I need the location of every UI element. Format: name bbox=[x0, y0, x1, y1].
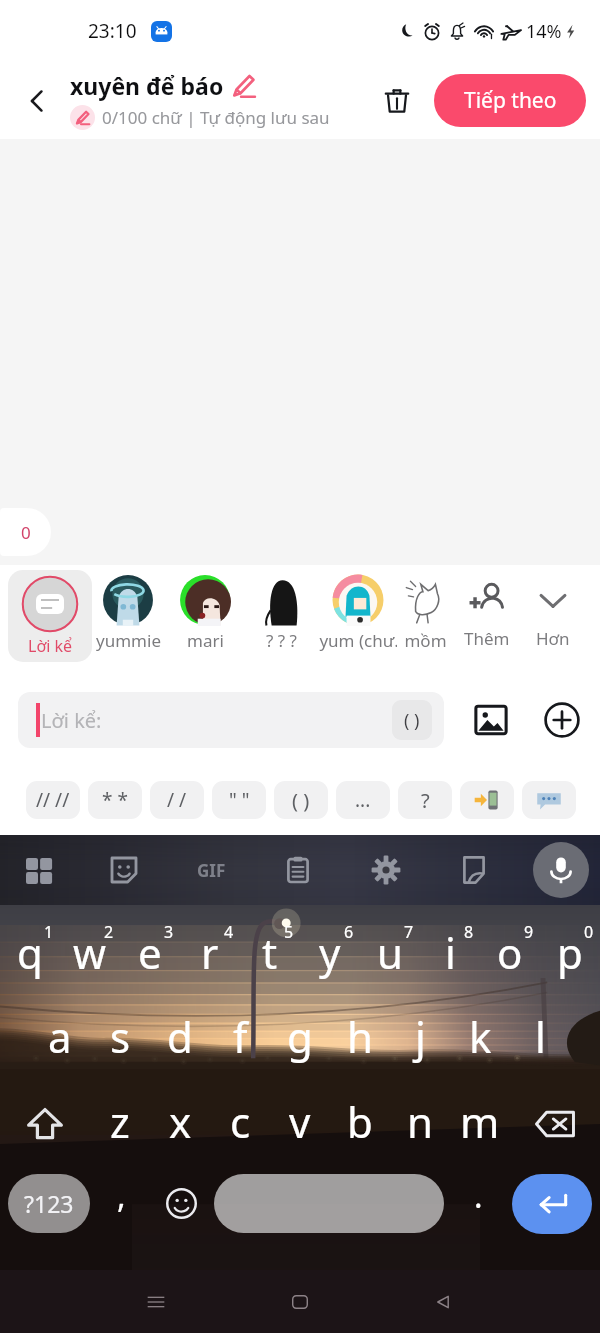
button[interactable]: 9 bbox=[480, 905, 540, 991]
staticText: y bbox=[319, 924, 341, 981]
button[interactable]: Chat bbox=[522, 781, 576, 819]
button[interactable]: Tiếp theo bbox=[434, 74, 586, 127]
button[interactable]: yum (chư… bbox=[319, 574, 397, 652]
button[interactable]: Clipboard bbox=[275, 847, 321, 893]
button[interactable]: mồm bbox=[386, 574, 464, 652]
button[interactable]: 0 bbox=[0, 508, 51, 556]
staticText: // // bbox=[36, 787, 70, 813]
button[interactable]: Stickers bbox=[101, 847, 147, 893]
button[interactable]: Hơn bbox=[517, 577, 589, 650]
button[interactable]: b bbox=[330, 1088, 390, 1160]
button[interactable]: Apps bbox=[15, 847, 61, 893]
button[interactable]: 0 bbox=[540, 905, 600, 991]
staticText: " " bbox=[229, 787, 250, 813]
button[interactable]: 6 bbox=[300, 905, 360, 991]
button[interactable]: Voice input bbox=[533, 842, 589, 898]
button[interactable]: Text theme bbox=[451, 847, 497, 893]
button[interactable]: ?123 bbox=[8, 1174, 90, 1233]
button[interactable]: Recents bbox=[130, 1276, 182, 1328]
button[interactable]: Send to phone bbox=[460, 781, 514, 819]
button[interactable]: Shift bbox=[0, 1088, 90, 1160]
button[interactable]: Emoji bbox=[158, 1174, 204, 1233]
button[interactable]: Lời kể bbox=[8, 570, 92, 662]
staticText: q bbox=[17, 924, 43, 981]
button[interactable]: k bbox=[450, 1008, 510, 1080]
button[interactable]: mari bbox=[166, 574, 244, 652]
button[interactable]: m bbox=[450, 1088, 510, 1160]
button[interactable]: Settings bbox=[363, 847, 409, 893]
button[interactable]: 3 bbox=[120, 905, 180, 991]
button[interactable]: GIF bbox=[189, 848, 233, 892]
button[interactable]: Add image bbox=[470, 699, 512, 741]
staticText: , bbox=[117, 1174, 126, 1218]
staticText: xuyên để báo bbox=[70, 70, 224, 101]
staticText: g bbox=[287, 1008, 313, 1065]
staticText: r bbox=[201, 924, 219, 981]
button[interactable]: ... bbox=[336, 781, 390, 819]
button[interactable]: c bbox=[210, 1088, 270, 1160]
button[interactable]: Back bbox=[9, 73, 65, 129]
staticText: * * bbox=[102, 787, 128, 813]
staticText: 1 bbox=[44, 921, 54, 943]
button[interactable]: f bbox=[210, 1008, 270, 1080]
button[interactable]: Delete bbox=[370, 74, 424, 128]
staticText: 7 bbox=[404, 921, 414, 943]
button[interactable]: 1 bbox=[0, 905, 60, 991]
button[interactable]: * * bbox=[88, 781, 142, 819]
button[interactable]: Thêm bbox=[449, 577, 525, 650]
staticText: yummie bbox=[96, 629, 161, 652]
staticText: 4 bbox=[224, 921, 234, 943]
button[interactable]: / / bbox=[150, 781, 204, 819]
button[interactable]: Lời kể: bbox=[18, 692, 444, 748]
button[interactable]: v bbox=[270, 1088, 330, 1160]
staticText: p bbox=[557, 924, 583, 981]
staticText: . bbox=[474, 1174, 483, 1218]
staticText: 0 bbox=[584, 921, 594, 943]
button[interactable]: Back bbox=[417, 1276, 469, 1328]
staticText: Lời kể: bbox=[41, 707, 102, 734]
staticText: z bbox=[110, 1093, 130, 1150]
button[interactable]: 5 bbox=[240, 905, 300, 991]
button[interactable]: yummie bbox=[89, 574, 167, 652]
button[interactable]: 4 bbox=[180, 905, 240, 991]
button[interactable]: z bbox=[90, 1088, 150, 1160]
button[interactable]: Backspace bbox=[510, 1088, 600, 1160]
button[interactable]: 8 bbox=[420, 905, 480, 991]
staticText: GIF bbox=[197, 859, 226, 882]
staticText: / / bbox=[167, 787, 187, 813]
button[interactable]: // // bbox=[26, 781, 80, 819]
staticText: a bbox=[48, 1008, 72, 1065]
button[interactable]: Space bbox=[214, 1174, 444, 1233]
staticText: Thêm bbox=[464, 627, 510, 650]
button[interactable]: 7 bbox=[360, 905, 420, 991]
button[interactable]: . bbox=[456, 1174, 500, 1233]
staticText: s bbox=[110, 1008, 131, 1065]
staticText: ( ) bbox=[404, 708, 420, 733]
staticText: mồm bbox=[404, 629, 447, 652]
button[interactable]: 2 bbox=[60, 905, 120, 991]
button[interactable]: " " bbox=[212, 781, 266, 819]
button[interactable]: ( ) bbox=[274, 781, 328, 819]
button[interactable]: ? ? ? bbox=[242, 574, 320, 652]
button[interactable]: Parentheses bbox=[392, 700, 432, 740]
button[interactable]: , bbox=[100, 1174, 142, 1233]
button[interactable]: More options bbox=[541, 699, 583, 741]
button[interactable]: g bbox=[270, 1008, 330, 1080]
staticText: 14% bbox=[526, 19, 562, 44]
button[interactable]: Enter bbox=[512, 1174, 592, 1234]
button[interactable]: n bbox=[390, 1088, 450, 1160]
button[interactable]: ? bbox=[398, 781, 452, 819]
staticText: 23:10 bbox=[88, 18, 137, 44]
staticText: t bbox=[262, 924, 278, 981]
button[interactable]: j bbox=[390, 1008, 450, 1080]
button[interactable]: x bbox=[150, 1088, 210, 1160]
button[interactable]: s bbox=[90, 1008, 150, 1080]
button[interactable]: a bbox=[30, 1008, 90, 1080]
staticText: 0/100 chữ | Tự động lưu sau bbox=[102, 106, 330, 129]
button[interactable]: l bbox=[510, 1008, 570, 1080]
button[interactable]: d bbox=[150, 1008, 210, 1080]
staticText: j bbox=[415, 1008, 426, 1065]
button[interactable]: h bbox=[330, 1008, 390, 1080]
button[interactable]: Home bbox=[274, 1276, 326, 1328]
staticText: ?123 bbox=[24, 1188, 74, 1219]
